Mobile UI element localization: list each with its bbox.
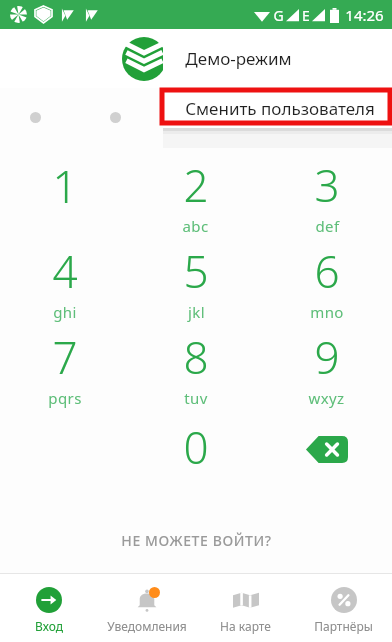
staticText: 7 [52, 327, 78, 387]
staticText: jkl [188, 302, 205, 322]
staticText: ghi [53, 302, 77, 322]
button[interactable]: Демо-режим [163, 29, 392, 88]
staticText: 6 [314, 241, 340, 301]
staticText: tuv [184, 388, 208, 408]
staticText: Вход [35, 618, 63, 634]
button[interactable]: 8 [130, 324, 261, 410]
button[interactable]: Партнёры [294, 574, 392, 642]
staticText: Партнёры [314, 618, 373, 634]
button[interactable]: На карте [196, 574, 294, 642]
button[interactable]: Вход [0, 574, 98, 642]
button[interactable]: Уведомления [98, 574, 196, 642]
staticText: 4 [52, 241, 78, 301]
staticText: 2 [183, 155, 209, 215]
staticText: 8 [183, 327, 209, 387]
button[interactable]: 5 [130, 238, 261, 324]
button[interactable]: Sberbank logo [122, 37, 166, 81]
staticText: 0 [183, 417, 209, 477]
button[interactable]: 1 [0, 152, 130, 238]
staticText: Демо-режим [185, 47, 292, 70]
button[interactable]: НЕ МОЖЕТЕ ВОЙТИ? [103, 517, 290, 552]
staticText: Сменить пользователя [185, 97, 375, 120]
staticText: mno [310, 302, 344, 322]
button[interactable]: 0 [130, 410, 261, 496]
staticText: pqrs [48, 388, 82, 408]
button[interactable]: 2 [130, 152, 261, 238]
staticText: 3 [314, 155, 340, 215]
staticText: def [315, 216, 340, 236]
button[interactable]: 9 [261, 324, 392, 410]
staticText: wxyz [308, 388, 345, 408]
button[interactable]: 7 [0, 324, 130, 410]
staticText: abc [182, 216, 209, 236]
staticText: 5 [183, 241, 209, 301]
staticText: G [273, 6, 284, 25]
button[interactable]: 3 [261, 152, 392, 238]
staticText: На карте [220, 618, 271, 634]
button[interactable]: 6 [261, 238, 392, 324]
button[interactable]: 4 [0, 238, 130, 324]
staticText: 1 [52, 156, 78, 216]
staticText: Уведомления [107, 618, 187, 634]
button[interactable]: Сменить пользователя [163, 88, 392, 128]
staticText: НЕ МОЖЕТЕ ВОЙТИ? [121, 531, 272, 550]
staticText: 14:26 [345, 5, 384, 25]
staticText: E [302, 6, 310, 25]
button[interactable]: Backspace [261, 410, 392, 496]
staticText: 9 [314, 327, 340, 387]
